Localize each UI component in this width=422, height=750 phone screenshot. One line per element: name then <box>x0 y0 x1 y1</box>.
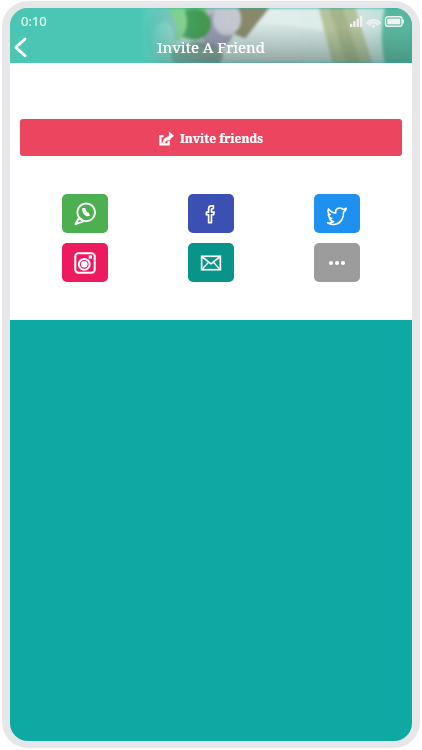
staticText: 0:10 <box>21 12 47 30</box>
button[interactable]: WhatsApp <box>62 194 108 233</box>
button[interactable]: Facebook <box>188 194 234 233</box>
staticText: Invite A Friend <box>157 37 265 57</box>
staticText: Invite friends <box>180 130 263 146</box>
button[interactable]: Twitter <box>314 194 360 233</box>
button[interactable]: More <box>314 243 360 282</box>
button[interactable]: Back <box>10 31 36 63</box>
button[interactable]: Invite friends <box>20 119 402 156</box>
button[interactable]: Instagram <box>62 243 108 282</box>
button[interactable]: Email <box>188 243 234 282</box>
